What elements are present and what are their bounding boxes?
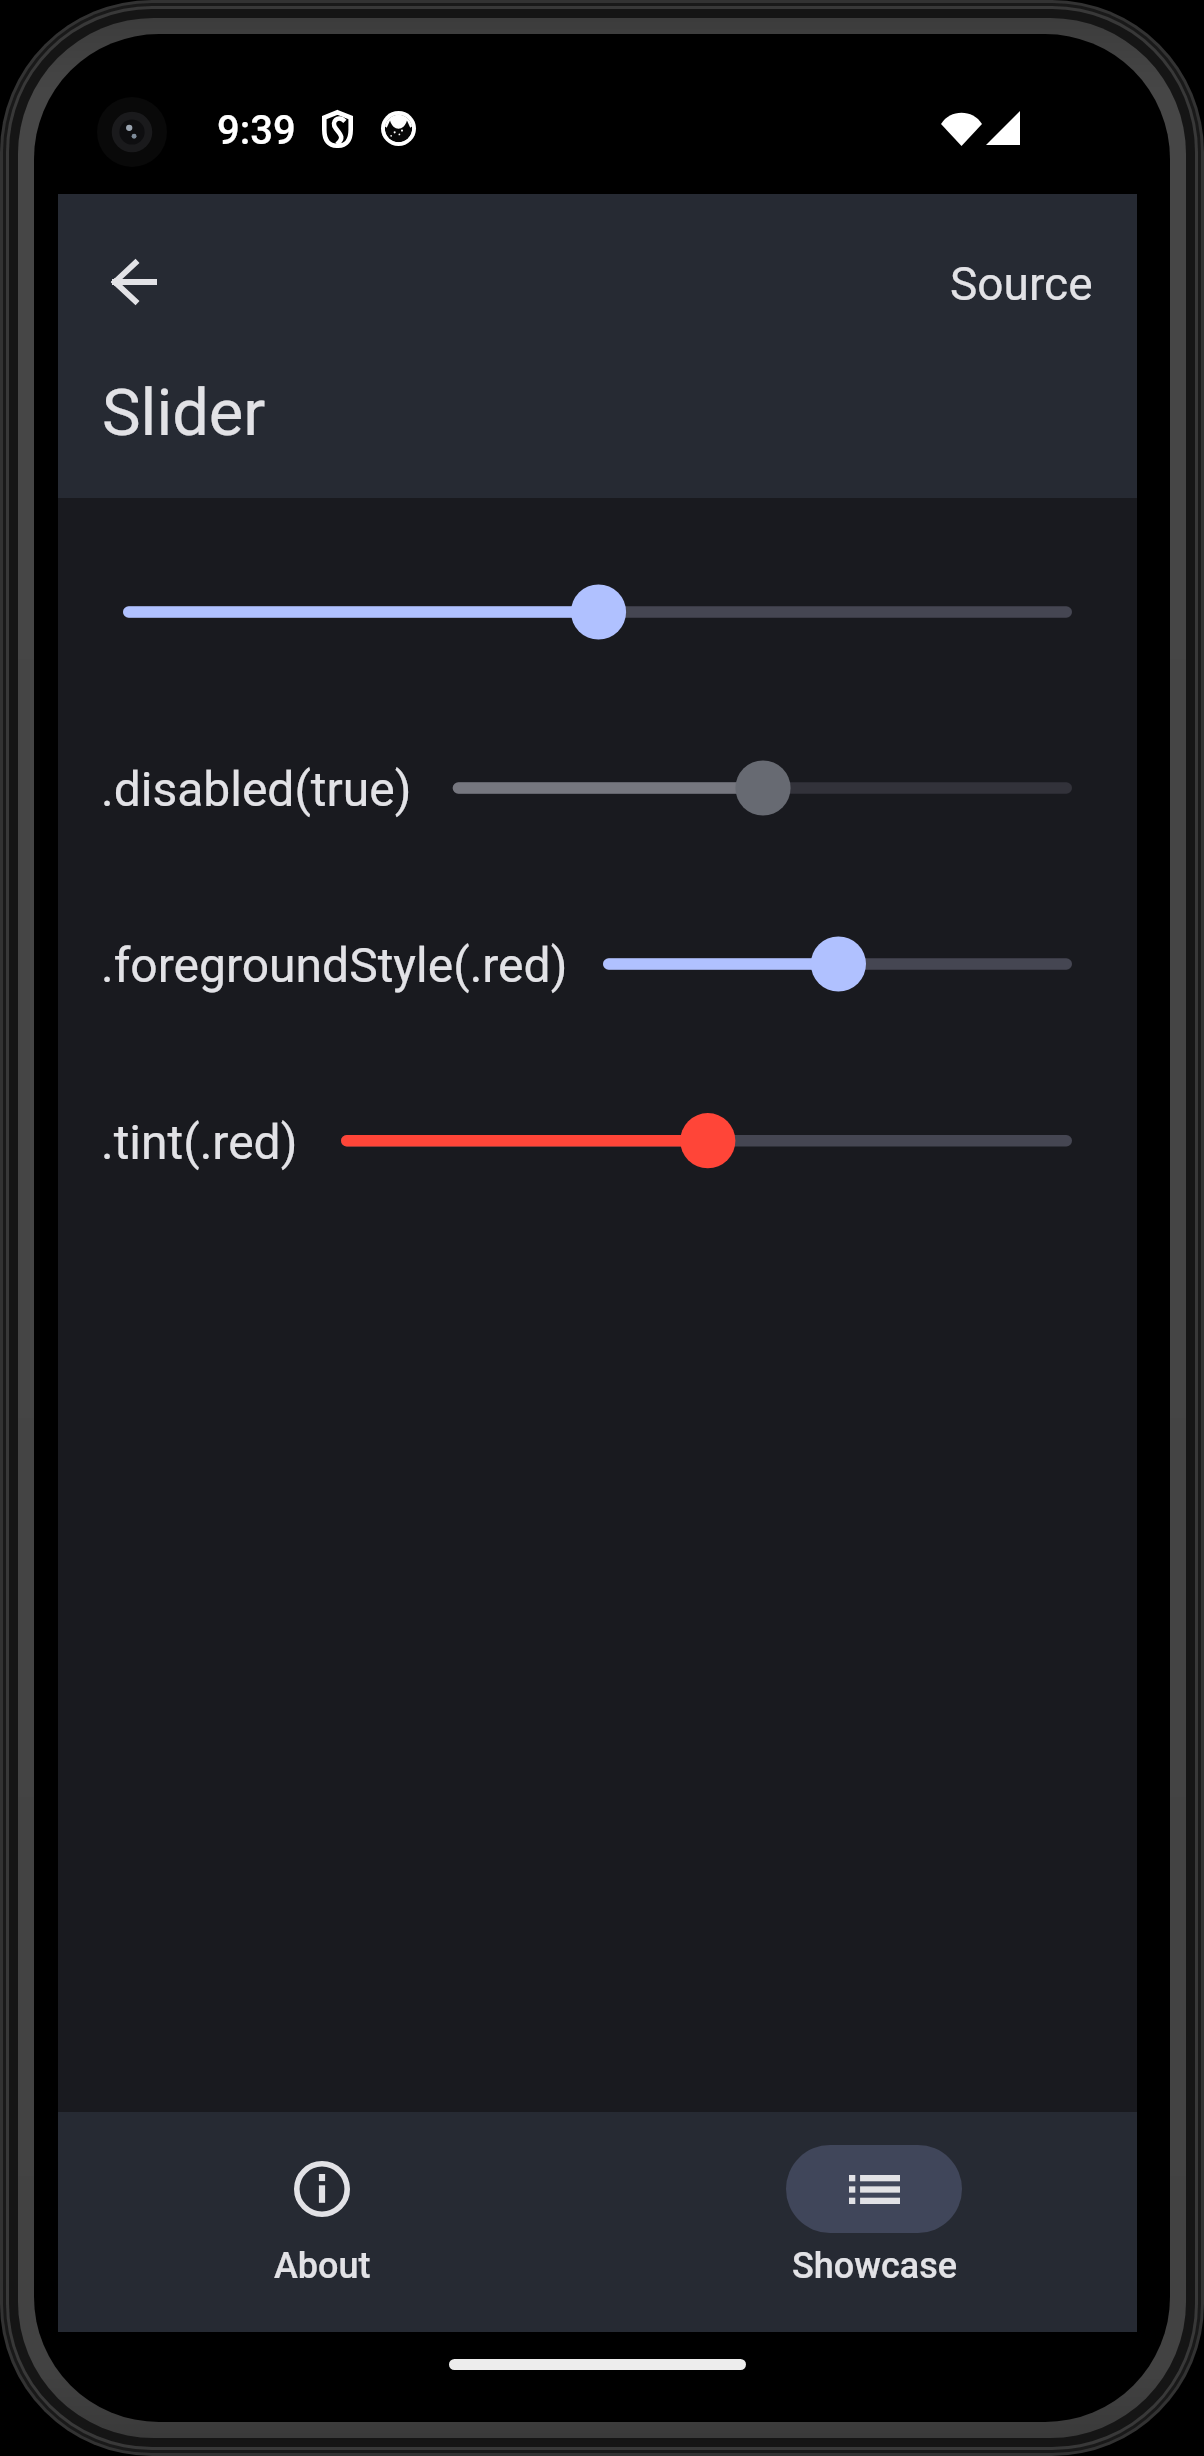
staticText: 9:39 (217, 107, 296, 154)
staticText: .disabled(true) (101, 761, 412, 817)
button[interactable]: Source (932, 243, 1111, 325)
button[interactable]: About (187, 2112, 457, 2332)
staticText: .foregroundStyle(.red) (101, 937, 568, 993)
button[interactable]: Showcase (739, 2112, 1009, 2332)
staticText: .tint(.red) (101, 1114, 298, 1170)
staticText: Showcase (792, 2245, 957, 2287)
button[interactable]: Back (86, 234, 182, 330)
staticText: Source (950, 257, 1093, 311)
staticText: Slider (102, 375, 266, 451)
staticText: About (274, 2245, 371, 2287)
